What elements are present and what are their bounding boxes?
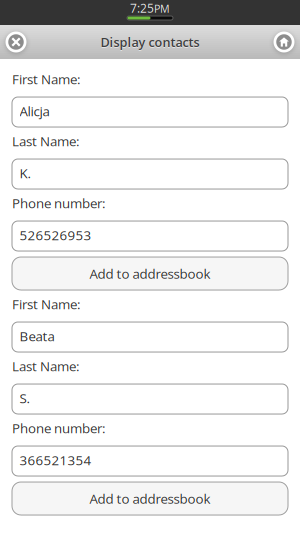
staticText: First Name: bbox=[12, 295, 81, 313]
staticText: Display contacts bbox=[100, 34, 199, 52]
button[interactable]: Add to addressbook bbox=[12, 482, 288, 515]
button[interactable]: Add to addressbook bbox=[12, 257, 288, 290]
staticText: S. bbox=[19, 389, 30, 407]
staticText: 7:25 bbox=[130, 0, 154, 16]
staticText: 526526953 bbox=[19, 226, 91, 244]
staticText: Beata bbox=[19, 327, 54, 345]
button[interactable]: Home bbox=[269, 27, 299, 57]
button[interactable]: Close bbox=[1, 27, 31, 57]
staticText: Last Name: bbox=[12, 132, 80, 150]
staticText: First Name: bbox=[12, 70, 81, 88]
staticText: Add to addressbook bbox=[89, 264, 210, 283]
staticText: Add to addressbook bbox=[89, 489, 210, 508]
staticText: K. bbox=[19, 164, 31, 182]
staticText: Phone number: bbox=[12, 419, 106, 437]
staticText: Alicja bbox=[19, 102, 49, 120]
staticText: PM bbox=[154, 1, 170, 16]
staticText: Phone number: bbox=[12, 194, 106, 212]
staticText: Display contacts bbox=[100, 33, 199, 51]
staticText: Last Name: bbox=[12, 357, 80, 375]
staticText: 366521354 bbox=[19, 451, 91, 469]
